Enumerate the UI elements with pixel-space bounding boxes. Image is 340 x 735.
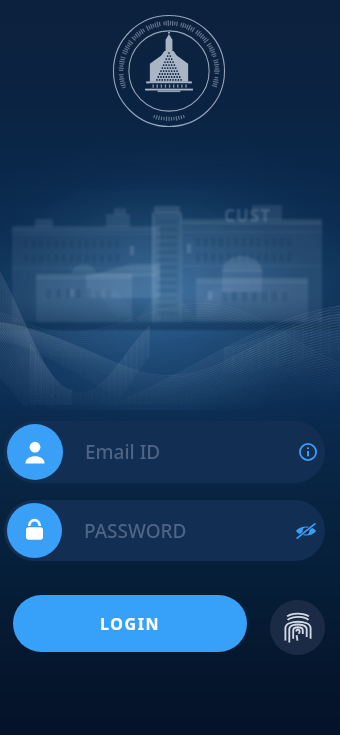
button[interactable]: LOGIN (13, 595, 247, 652)
staticText: LOGIN (100, 613, 161, 635)
button[interactable]: Fingerprint login (270, 600, 325, 655)
button[interactable]: Show password (289, 514, 323, 548)
staticText: PASSWORD (84, 518, 187, 544)
staticText: CUST (224, 204, 271, 227)
button[interactable]: Email ID (4, 421, 325, 483)
button[interactable]: Information (292, 436, 324, 468)
staticText: Email ID (85, 439, 161, 465)
button[interactable]: PASSWORD (4, 500, 325, 561)
